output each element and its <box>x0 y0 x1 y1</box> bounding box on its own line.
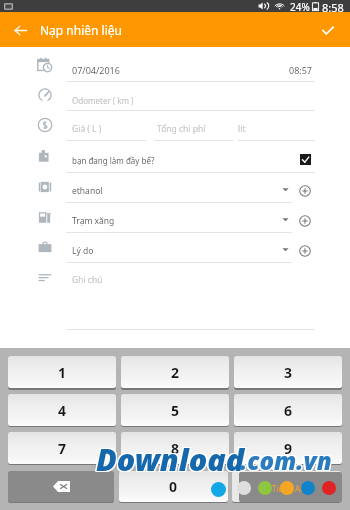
staticText: Giá ( L ) <box>72 123 102 135</box>
button[interactable] <box>8 471 114 502</box>
button[interactable]: 1 <box>8 356 116 388</box>
button[interactable]: Add <box>299 215 311 227</box>
button[interactable]: Field icon <box>37 148 53 164</box>
button[interactable]: Add <box>299 245 311 257</box>
staticText: .com.vn <box>241 444 333 477</box>
staticText: Download <box>95 437 244 479</box>
staticText: 1 <box>58 363 67 382</box>
button[interactable]: Field icon <box>37 117 53 133</box>
button[interactable]: Add <box>299 185 311 197</box>
button[interactable]: 9 <box>234 432 342 464</box>
button[interactable]: 2 <box>121 356 229 388</box>
staticText: 3 <box>284 363 293 382</box>
staticText: 6 <box>284 401 293 420</box>
staticText: Download <box>96 437 245 479</box>
staticText: .com.vn <box>239 443 331 476</box>
staticText: Tiếng Anh <box>272 483 310 494</box>
staticText: .com.vn <box>241 445 333 478</box>
staticText: Nạp nhiên liệu <box>40 22 122 38</box>
staticText: .com.vn <box>238 444 330 477</box>
staticText: 07/04/2016 <box>72 64 120 76</box>
staticText: Download <box>97 437 246 479</box>
staticText: .com.vn <box>240 445 332 478</box>
button[interactable] <box>232 471 341 502</box>
button[interactable]: 5 <box>121 394 229 426</box>
staticText: 4 <box>58 401 67 420</box>
staticText: Download <box>95 438 244 480</box>
button[interactable]: Field icon <box>37 209 53 225</box>
staticText: Download <box>95 439 244 481</box>
button[interactable]: Back <box>6 16 34 44</box>
button[interactable]: Full tank <box>300 154 311 165</box>
staticText: 08:57 <box>289 64 313 76</box>
staticText: Download <box>96 438 245 480</box>
staticText: lít <box>238 123 246 135</box>
button[interactable]: 6 <box>234 394 342 426</box>
staticText: 8:58 <box>322 0 344 12</box>
staticText: bạn đang làm đầy bể? <box>72 155 155 166</box>
staticText: ethanol <box>72 185 103 197</box>
staticText: .com.vn <box>239 445 331 478</box>
button[interactable]: Expand <box>282 217 289 222</box>
staticText: .com.vn <box>240 444 332 477</box>
button[interactable]: Expand <box>282 187 289 192</box>
button[interactable]: 3 <box>234 356 342 388</box>
button[interactable]: Field icon <box>37 269 53 285</box>
staticText: 0 <box>169 477 178 496</box>
staticText: Download <box>97 438 246 480</box>
staticText: Ghi chú <box>72 274 103 286</box>
staticText: .com.vn <box>241 443 333 476</box>
button[interactable]: 0 <box>119 471 228 502</box>
staticText: 24% <box>290 0 310 12</box>
staticText: 7 <box>58 439 67 458</box>
staticText: Download <box>97 439 246 481</box>
button[interactable]: 7 <box>8 432 116 464</box>
staticText: 8 <box>171 439 180 458</box>
staticText: Odometer ( km ) <box>72 95 134 106</box>
staticText: Download <box>96 439 245 481</box>
button[interactable]: Field icon <box>37 239 53 255</box>
staticText: Lý do <box>72 245 94 257</box>
button[interactable]: Field icon <box>37 57 53 73</box>
button[interactable]: 8 <box>121 432 229 464</box>
staticText: Tổng chi phí <box>157 123 206 135</box>
button[interactable]: Save <box>314 16 342 44</box>
button[interactable]: Change keyboard language <box>239 472 342 502</box>
button[interactable]: Field icon <box>37 87 53 103</box>
staticText: 2 <box>171 363 180 382</box>
button[interactable]: Expand <box>282 247 289 252</box>
button[interactable]: Field icon <box>37 179 53 195</box>
staticText: .com.vn <box>240 443 332 476</box>
staticText: 5 <box>171 401 180 420</box>
staticText: 9 <box>284 439 293 458</box>
staticText: Trạm xăng <box>72 215 115 227</box>
button[interactable]: 4 <box>8 394 116 426</box>
